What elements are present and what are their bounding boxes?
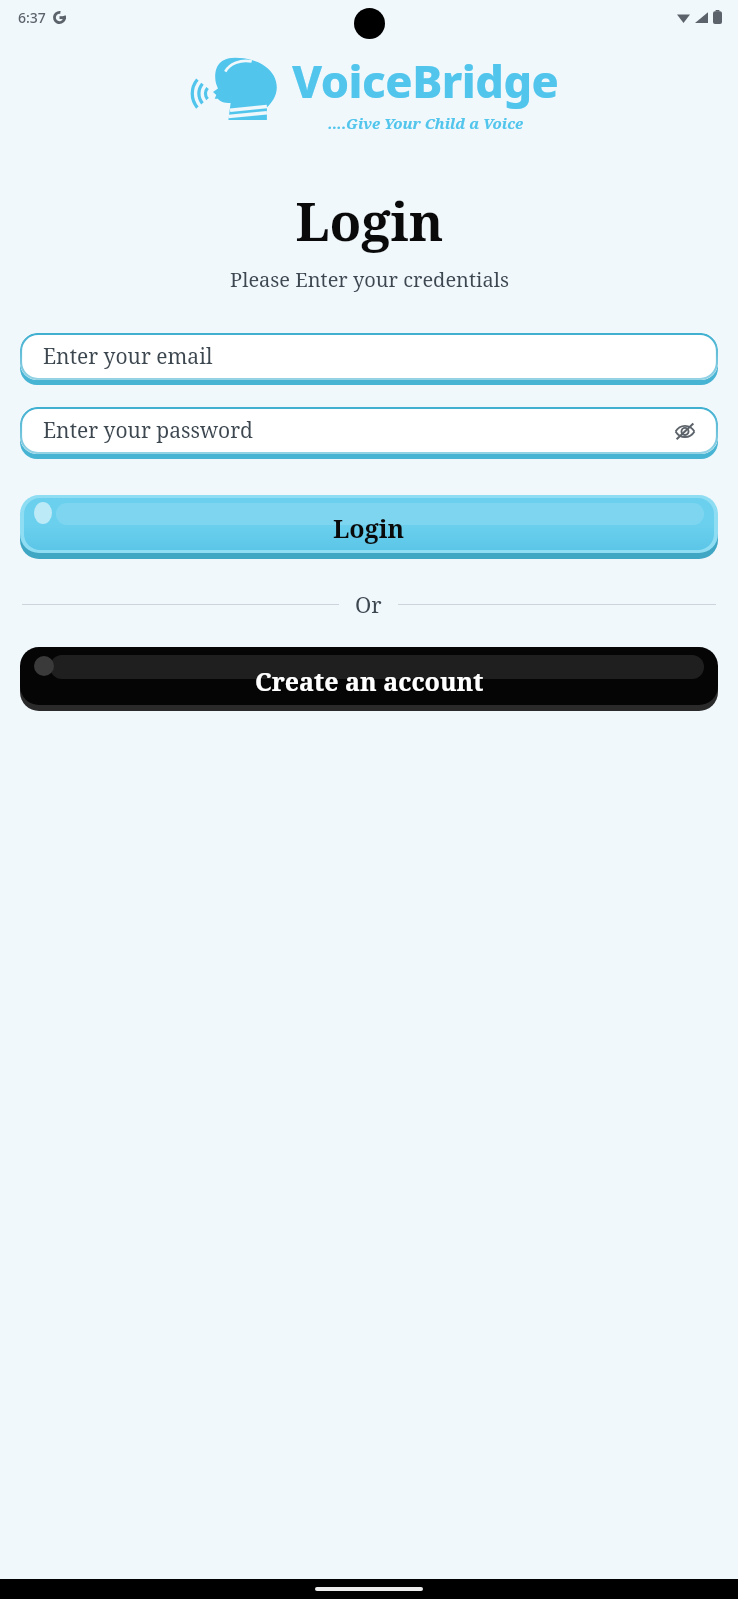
other: VoiceBridge logo [180,53,290,131]
button[interactable]: Enter your password [20,407,718,459]
button[interactable]: Show password [672,418,698,444]
staticText: 6:37 [18,8,46,27]
button[interactable]: Login [20,495,718,559]
button[interactable]: Enter your email [20,333,718,385]
staticText: Login [295,185,444,256]
staticText: Create an account [255,664,484,698]
staticText: Please Enter your credentials [230,266,509,293]
staticText: VoiceBridge [292,50,559,111]
staticText: Enter your email [43,342,213,371]
staticText: Enter your password [43,416,253,445]
button[interactable]: Create an account [20,647,718,711]
staticText: Login [333,511,405,545]
staticText: ....Give Your Child a Voice [328,113,524,133]
staticText: Or [355,589,382,619]
